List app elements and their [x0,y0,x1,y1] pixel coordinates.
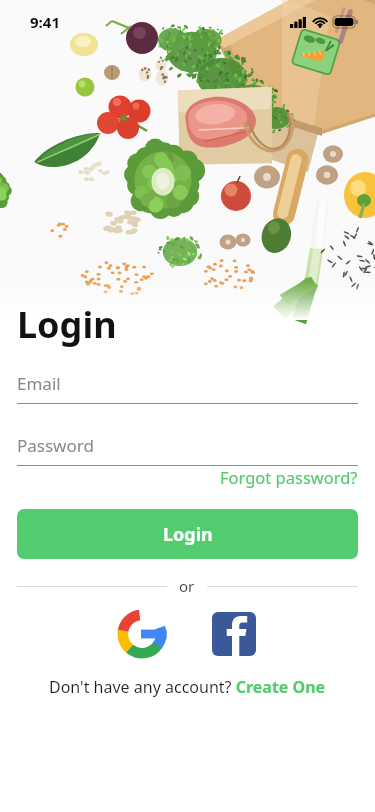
staticText: Password [17,434,94,457]
button[interactable]: Email [17,372,358,404]
staticText: Login [163,522,213,547]
button[interactable]: Don't have any account? Create One [17,676,358,698]
button[interactable]: Sign in with Facebook [208,608,260,660]
staticText: Don't have any account? Create One [49,676,326,698]
button[interactable]: Forgot password? [220,466,358,488]
staticText: Forgot password? [220,466,358,488]
staticText: Login [17,300,117,349]
staticText: or [179,576,195,596]
button[interactable]: Login [17,509,358,559]
button[interactable]: Password [17,434,358,466]
staticText: 9:41 [30,12,60,32]
staticText: Email [17,372,61,395]
button[interactable]: Sign in with Google [116,608,168,660]
